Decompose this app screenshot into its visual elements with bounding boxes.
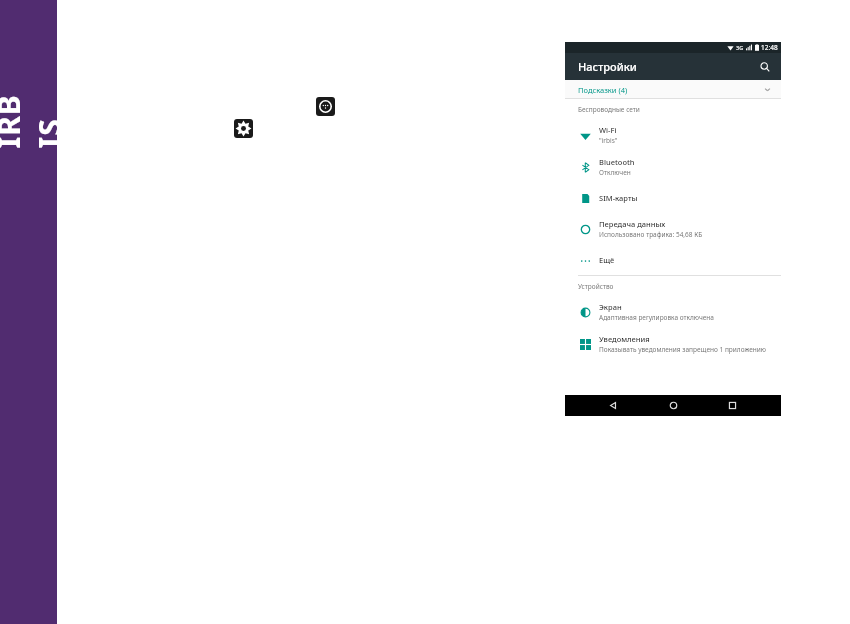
button[interactable]: Home bbox=[663, 395, 684, 416]
button[interactable]: Search bbox=[756, 58, 774, 76]
staticText: Передача данных bbox=[599, 219, 666, 229]
staticText: Адаптивная регулировка отключена bbox=[599, 313, 714, 322]
button[interactable]: SIM-карты bbox=[565, 183, 781, 213]
button[interactable]: Передача данных bbox=[565, 213, 781, 245]
staticText: 3G bbox=[736, 44, 744, 51]
staticText: Устройство bbox=[578, 282, 614, 291]
staticText: Bluetooth bbox=[599, 157, 635, 167]
staticText: Отключен bbox=[599, 168, 631, 177]
staticText: Уведомления bbox=[599, 334, 650, 344]
button[interactable]: Recent apps bbox=[722, 395, 743, 416]
button[interactable]: Settings bbox=[234, 119, 253, 138]
button[interactable]: Экран bbox=[565, 296, 781, 328]
staticText: SIM-карты bbox=[599, 193, 638, 203]
staticText: Беспроводные сети bbox=[578, 105, 640, 114]
button[interactable]: Apps bbox=[316, 97, 335, 116]
staticText: Экран bbox=[599, 302, 622, 312]
staticText: Подсказки (4) bbox=[578, 85, 628, 95]
button[interactable]: Wi-Fi bbox=[565, 119, 781, 151]
button[interactable]: Back bbox=[603, 395, 624, 416]
button[interactable]: Уведомления bbox=[565, 328, 781, 360]
staticText: Настройки bbox=[578, 59, 637, 74]
staticText: Показывать уведомления запрещено 1 прило… bbox=[599, 345, 766, 354]
button[interactable]: Подсказки (4) bbox=[565, 80, 781, 99]
button[interactable]: Ещё bbox=[565, 245, 781, 275]
staticText: Wi-Fi bbox=[599, 125, 617, 135]
staticText: Использовано трафика: 54,68 КБ bbox=[599, 230, 703, 239]
staticText: "irbis" bbox=[599, 136, 618, 145]
button[interactable]: Bluetooth bbox=[565, 151, 781, 183]
staticText: Ещё bbox=[599, 255, 615, 265]
staticText: IRBIS bbox=[0, 91, 69, 148]
staticText: 12:48 bbox=[761, 43, 778, 52]
